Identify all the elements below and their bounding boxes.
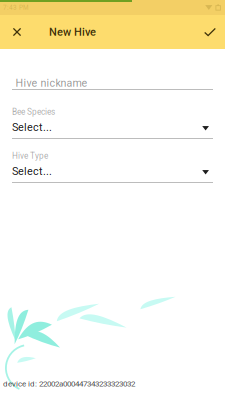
staticText: New Hive [49,25,96,38]
staticText: device id: 22002a000447343233323032 [3,379,135,388]
button[interactable]: Hive Type [12,150,213,183]
button[interactable]: Bee Species [12,106,213,139]
button[interactable]: Close [6,15,28,49]
staticText: 7:43 PM [3,4,29,11]
staticText: Hive Type [12,151,48,161]
staticText: Select... [12,121,52,134]
button[interactable]: Hive nickname [12,72,213,90]
staticText: Select... [12,165,52,178]
button[interactable]: Save [200,15,220,49]
staticText: Hive nickname [15,77,87,89]
staticText: Bee Species [12,107,55,117]
